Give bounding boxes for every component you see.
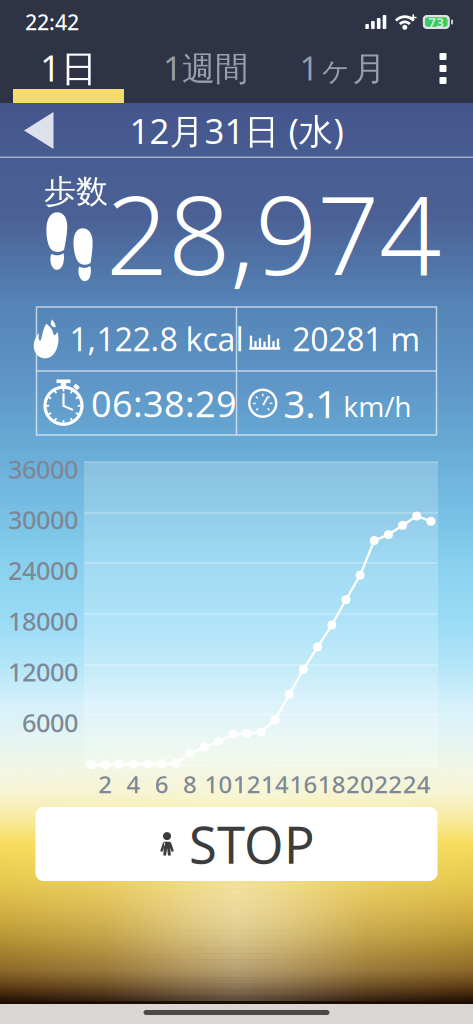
staticText: 20281 m (292, 317, 420, 360)
staticText: 24000 (8, 553, 78, 587)
staticText: 73 (428, 13, 444, 31)
button[interactable]: 1週間 (137, 44, 274, 103)
button[interactable]: Previous day (0, 103, 76, 158)
staticText: 1,122.8 kcal (69, 317, 243, 360)
staticText: 16 (289, 768, 317, 800)
button[interactable]: 1ヶ月 (274, 44, 411, 103)
staticText: 28,974 (106, 160, 441, 305)
button[interactable]: 1日 (0, 44, 137, 103)
staticText: km/h (343, 388, 411, 425)
staticText: 6000 (22, 705, 78, 739)
staticText: 20 (346, 768, 374, 800)
staticText: 10 (204, 768, 232, 800)
staticText: 4 (126, 768, 140, 800)
staticText: 8 (183, 768, 197, 800)
staticText: 12月31日 (水) (129, 107, 343, 153)
staticText: 18 (318, 768, 346, 800)
staticText: 1日 (40, 44, 97, 91)
staticText: 06:38:29 (91, 379, 237, 427)
staticText: 1ヶ月 (299, 45, 385, 90)
staticText: 12000 (8, 655, 78, 688)
staticText: 2 (98, 768, 112, 800)
staticText: 22 (374, 768, 402, 800)
staticText: 歩数 (44, 172, 108, 211)
staticText: 3.1 (283, 378, 337, 429)
staticText: STOP (189, 810, 315, 878)
button[interactable]: More options (413, 44, 473, 103)
staticText: 36000 (8, 452, 78, 486)
staticText: 6 (155, 768, 169, 800)
staticText: 24 (403, 768, 431, 800)
staticText: 1週間 (163, 45, 248, 90)
button[interactable]: STOP (35, 807, 437, 881)
staticText: 12 (233, 768, 261, 800)
staticText: 30000 (8, 503, 78, 536)
staticText: 22:42 (25, 8, 79, 36)
staticText: 18000 (8, 604, 78, 638)
staticText: 14 (261, 768, 289, 800)
